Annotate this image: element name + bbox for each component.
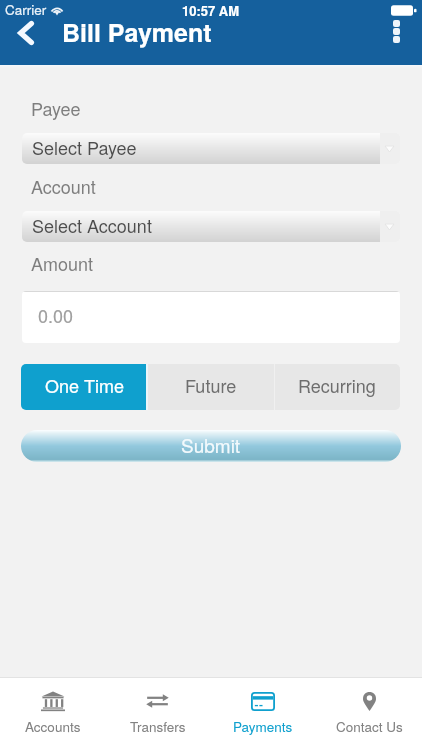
staticText: Accounts [25, 717, 81, 736]
button[interactable]: Select Payee [22, 133, 400, 164]
button[interactable]: 0.00 [22, 291, 400, 343]
staticText: Submit [181, 431, 241, 458]
staticText: Future [185, 372, 237, 398]
staticText: Recurring [298, 372, 376, 398]
button[interactable]: Back [10, 17, 42, 49]
staticText: Transfers [130, 717, 186, 736]
button[interactable]: Payments [210, 678, 316, 750]
staticText: 0.00 [38, 302, 74, 328]
button[interactable]: Future [148, 364, 274, 410]
staticText: Bill Payment [62, 14, 212, 50]
staticText: One Time [45, 372, 125, 398]
button[interactable]: Recurring [274, 364, 400, 410]
staticText: Select Account [32, 212, 152, 238]
staticText: Contact Us [336, 717, 403, 736]
staticText: Select Payee [32, 134, 137, 160]
button[interactable]: Select Account [22, 211, 400, 242]
button[interactable]: Submit [21, 430, 401, 462]
button[interactable]: More options [385, 16, 408, 47]
staticText: Payee [31, 95, 81, 121]
button[interactable]: One Time [21, 364, 148, 410]
staticText: Amount [31, 250, 94, 276]
staticText: Payments [233, 717, 293, 736]
button[interactable]: Contact Us [316, 678, 422, 750]
button[interactable]: Accounts [0, 678, 105, 750]
button[interactable]: Transfers [105, 678, 210, 750]
staticText: Account [31, 173, 96, 199]
staticText: Carrier [5, 0, 47, 19]
staticText: 10:57 AM [182, 1, 240, 20]
